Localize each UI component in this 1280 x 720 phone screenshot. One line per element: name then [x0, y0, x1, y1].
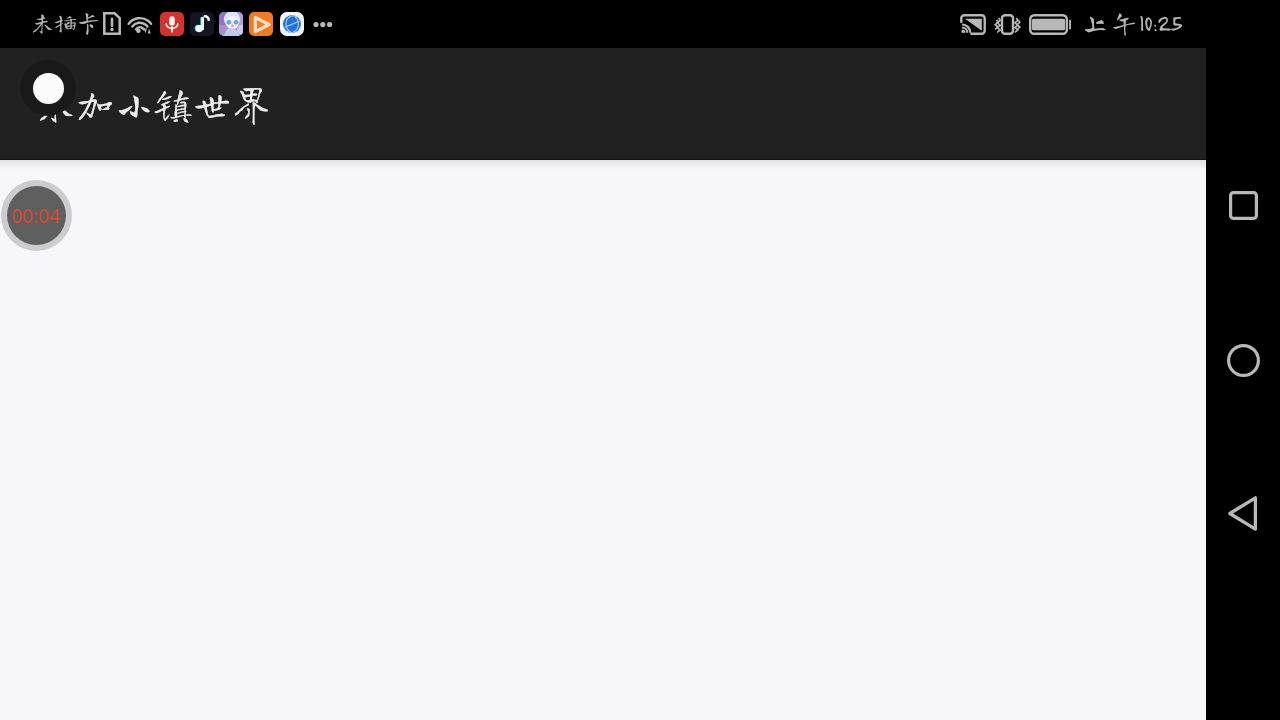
button[interactable]: Recent apps: [1218, 180, 1268, 230]
button[interactable]: Recording timer 00:04: [1, 180, 72, 251]
button[interactable]: Account avatar: [20, 60, 76, 116]
staticText: 未加小镇世界: [37, 88, 265, 136]
staticText: 00:04: [12, 203, 61, 229]
button[interactable]: Back: [1218, 488, 1268, 538]
button[interactable]: Home: [1218, 335, 1268, 385]
